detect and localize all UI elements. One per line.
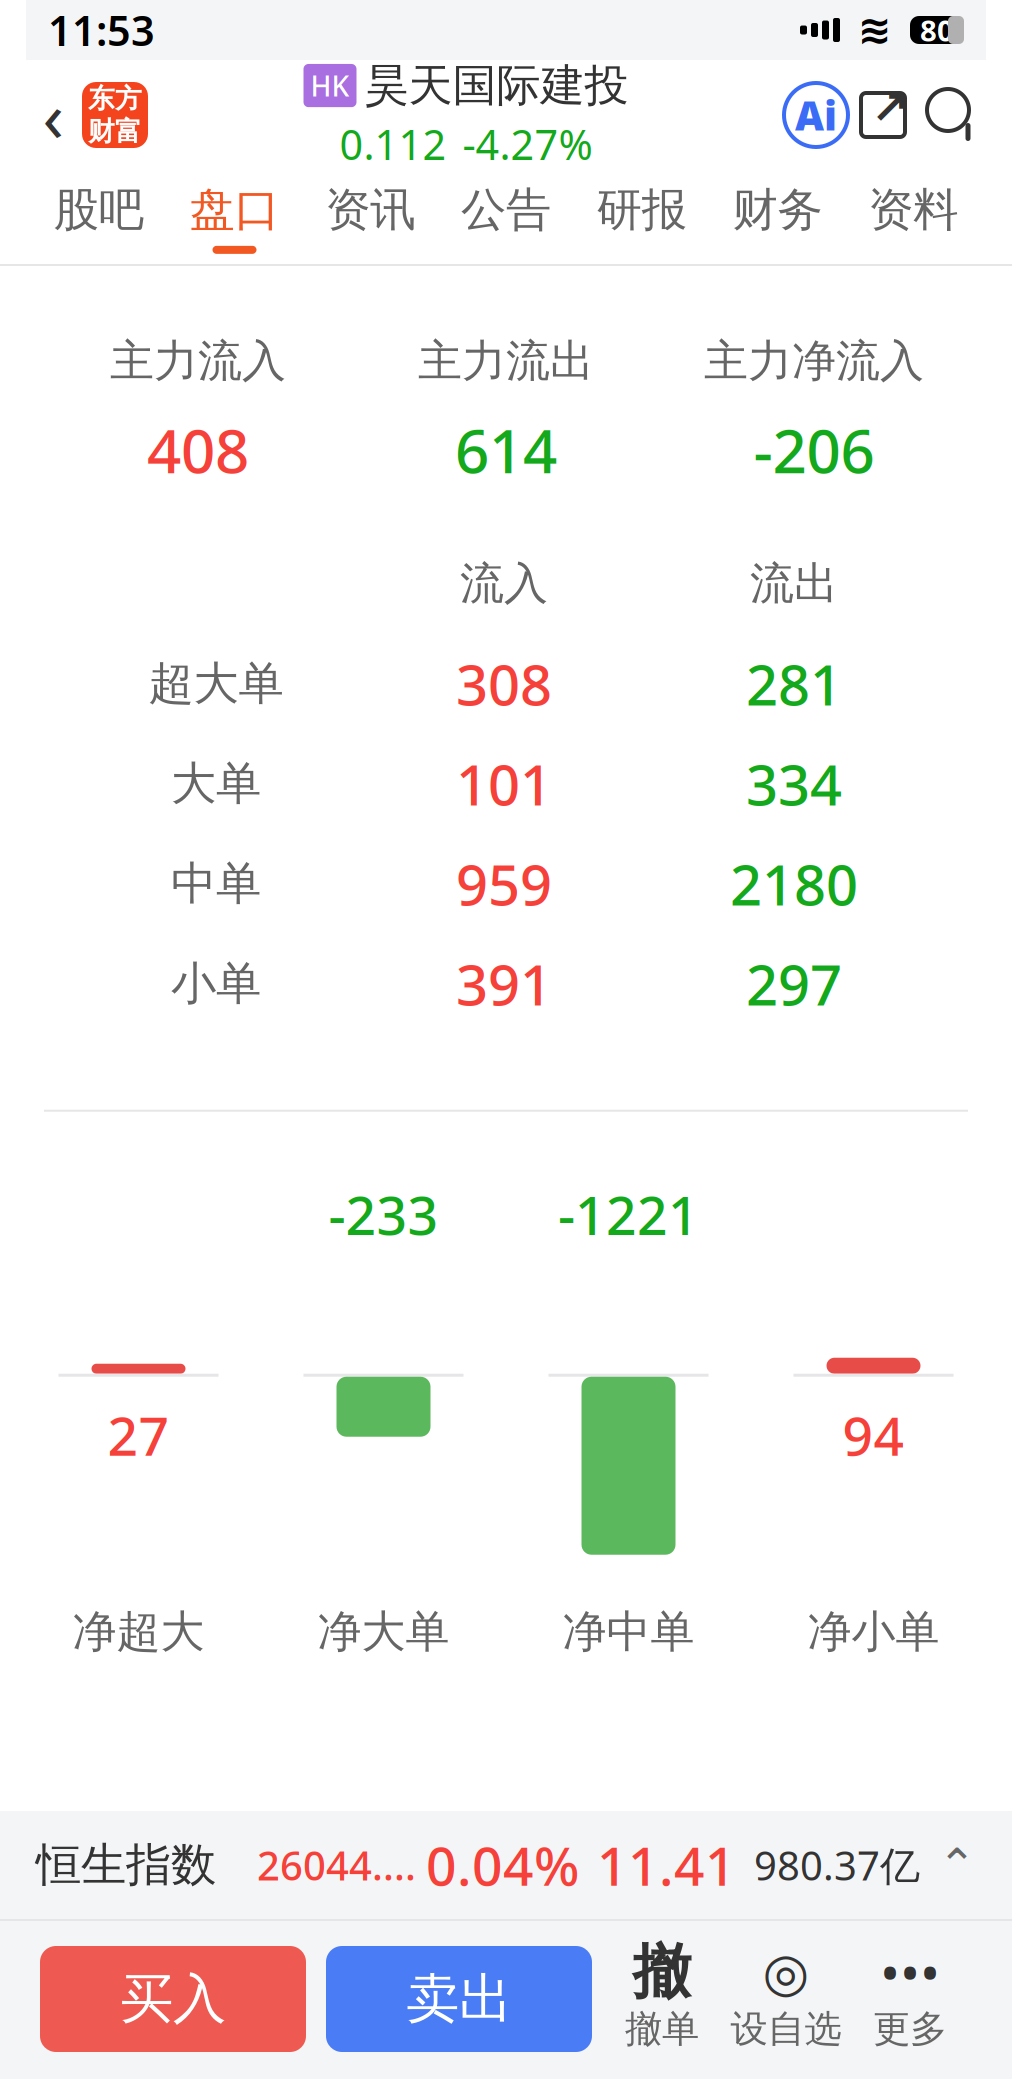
staticText: ••• bbox=[880, 1937, 940, 2007]
button[interactable]: Back bbox=[24, 80, 82, 150]
staticText: 财务 bbox=[732, 182, 822, 238]
button[interactable]: 公告 bbox=[455, 182, 557, 254]
button[interactable]: 财务 bbox=[726, 182, 828, 254]
staticText: 流出 bbox=[750, 557, 838, 611]
staticText: 设自选 bbox=[730, 2006, 841, 2052]
staticText: 股吧 bbox=[54, 182, 144, 238]
staticText: 281 bbox=[746, 646, 842, 721]
staticText: 流入 bbox=[460, 557, 548, 611]
staticText: 297 bbox=[746, 946, 842, 1021]
staticText: 2180 bbox=[730, 846, 858, 921]
button[interactable]: 恒生指数 bbox=[0, 1811, 1012, 1919]
staticText: 101 bbox=[456, 746, 552, 821]
button[interactable]: AI Assistant bbox=[784, 83, 848, 147]
staticText: 净大单 bbox=[317, 1605, 449, 1659]
staticText: 980.37亿 bbox=[754, 1838, 920, 1891]
staticText: 超大单 bbox=[148, 656, 283, 712]
staticText: 净中单 bbox=[562, 1605, 694, 1659]
staticText: 中单 bbox=[171, 856, 261, 912]
staticText: 撤 bbox=[632, 1936, 691, 2008]
staticText: 昊天国际建投 bbox=[364, 58, 628, 112]
button[interactable]: 东方财富 bbox=[82, 82, 148, 148]
staticText: 0.112 bbox=[339, 117, 446, 171]
staticText: Ai bbox=[795, 88, 837, 141]
staticText: 主力流入 bbox=[110, 334, 286, 388]
staticText: 盘口 bbox=[189, 182, 279, 238]
button[interactable]: Share bbox=[848, 80, 918, 150]
staticText: 公告 bbox=[461, 182, 551, 238]
staticText: 959 bbox=[456, 846, 552, 921]
staticText: 研报 bbox=[597, 182, 687, 238]
staticText: 0.04% bbox=[426, 1830, 579, 1900]
staticText: ◎ bbox=[762, 1942, 809, 2002]
staticText: 东方 bbox=[88, 82, 142, 115]
button[interactable]: 盘口 bbox=[183, 182, 285, 254]
staticText: 大单 bbox=[171, 756, 261, 812]
button[interactable]: 资料 bbox=[862, 182, 964, 254]
staticText: 11:53 bbox=[48, 3, 155, 57]
staticText: 80 bbox=[920, 10, 954, 49]
button[interactable]: ••• bbox=[848, 1946, 972, 2052]
staticText: -233 bbox=[328, 1179, 438, 1250]
staticText: 26044.... bbox=[257, 1838, 416, 1891]
staticText: 主力流出 bbox=[418, 334, 594, 388]
staticText: 308 bbox=[456, 646, 552, 721]
staticText: 资讯 bbox=[325, 182, 415, 238]
staticText: 净超大 bbox=[72, 1605, 204, 1659]
staticText: ‹ bbox=[42, 69, 63, 161]
staticText: 撤单 bbox=[625, 2006, 699, 2052]
staticText: 财富 bbox=[88, 115, 142, 148]
staticText: 27 bbox=[107, 1400, 169, 1470]
button[interactable]: 卖出 bbox=[326, 1946, 592, 2052]
staticText: -1221 bbox=[558, 1179, 699, 1250]
staticText: 94 bbox=[842, 1400, 904, 1470]
staticText: 更多 bbox=[873, 2006, 947, 2052]
staticText: ⌃ bbox=[938, 1839, 976, 1891]
button[interactable]: 资讯 bbox=[319, 182, 421, 254]
button[interactable]: 撤 bbox=[600, 1946, 724, 2052]
staticText: 11.41 bbox=[597, 1830, 736, 1900]
staticText: 买入 bbox=[120, 1966, 226, 2032]
staticText: ↗ bbox=[871, 82, 909, 134]
button[interactable]: ◎ bbox=[724, 1946, 848, 2052]
staticText: HK bbox=[310, 67, 349, 104]
staticText: 小单 bbox=[171, 956, 261, 1012]
staticText: 资料 bbox=[868, 182, 958, 238]
staticText: -206 bbox=[753, 410, 874, 490]
button[interactable]: 股吧 bbox=[48, 182, 150, 254]
staticText: 卖出 bbox=[406, 1966, 512, 2032]
button[interactable]: Search bbox=[918, 80, 988, 150]
button[interactable]: 买入 bbox=[40, 1946, 306, 2052]
staticText: 391 bbox=[456, 946, 552, 1021]
staticText: 主力净流入 bbox=[704, 334, 924, 388]
staticText: 恒生指数 bbox=[36, 1837, 216, 1893]
button[interactable]: 研报 bbox=[591, 182, 693, 254]
staticText: 614 bbox=[455, 410, 557, 490]
staticText: 408 bbox=[147, 410, 249, 490]
staticText: 334 bbox=[746, 746, 842, 821]
staticText: 净小单 bbox=[807, 1605, 939, 1659]
staticText: -4.27% bbox=[462, 117, 592, 171]
staticText: ≋ bbox=[858, 7, 892, 53]
